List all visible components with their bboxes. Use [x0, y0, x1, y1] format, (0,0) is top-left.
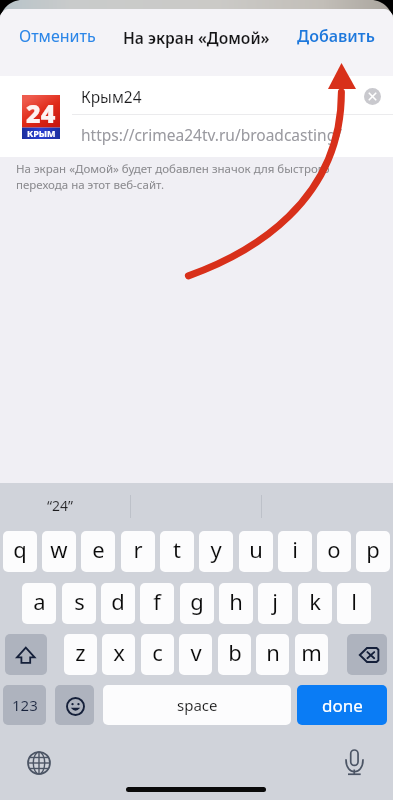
staticText: b — [228, 637, 242, 667]
staticText: u — [249, 534, 263, 564]
button[interactable]: space — [103, 685, 291, 725]
button[interactable]: q — [3, 531, 37, 572]
staticText: l — [351, 586, 357, 616]
button[interactable]: Крым24 — [81, 86, 142, 107]
staticText: p — [366, 534, 380, 564]
button[interactable]: t — [160, 531, 194, 572]
button[interactable]: z — [64, 634, 97, 675]
button[interactable]: v — [179, 634, 212, 675]
button[interactable]: Clear text — [364, 88, 381, 105]
staticText: На экран «Домой» — [123, 27, 270, 48]
staticText: n — [266, 637, 280, 667]
button[interactable]: x — [102, 634, 135, 675]
button[interactable]: 123 — [3, 685, 46, 725]
button[interactable]: h — [219, 583, 253, 624]
button[interactable]: s — [62, 583, 96, 624]
staticText: c — [152, 637, 163, 667]
staticText: k — [309, 586, 321, 616]
staticText: h — [229, 586, 243, 616]
button[interactable]: a — [22, 583, 56, 624]
button[interactable]: done — [297, 685, 387, 725]
button[interactable]: i — [278, 531, 312, 572]
staticText: i — [292, 534, 298, 564]
staticText: На экран «Домой» будет добавлен значок д… — [16, 161, 349, 192]
staticText: space — [177, 695, 218, 715]
button[interactable]: y — [199, 531, 233, 572]
staticText: w — [50, 534, 68, 564]
button[interactable]: Backspace — [347, 634, 387, 675]
staticText: e — [92, 534, 105, 564]
staticText: m — [301, 637, 322, 667]
button[interactable]: u — [239, 531, 273, 572]
staticText: a — [33, 586, 46, 616]
button[interactable]: g — [180, 583, 214, 624]
button[interactable]: Shift — [5, 634, 47, 675]
button[interactable]: m — [295, 634, 328, 675]
button[interactable]: k — [298, 583, 332, 624]
staticText: “24” — [47, 496, 74, 515]
staticText: 24 — [26, 96, 56, 130]
button[interactable]: o — [317, 531, 351, 572]
button[interactable]: e — [81, 531, 115, 572]
staticText: Добавить — [297, 25, 375, 47]
staticText: Крым24 — [81, 86, 142, 107]
button[interactable]: Отменить — [5, 19, 110, 53]
button[interactable]: Dictation — [346, 750, 363, 775]
button[interactable]: n — [256, 634, 289, 675]
staticText: f — [153, 586, 161, 616]
button[interactable]: f — [140, 583, 174, 624]
button[interactable]: Добавить — [283, 19, 389, 53]
staticText: y — [210, 534, 222, 564]
button[interactable]: j — [258, 583, 292, 624]
staticText: КРЫМ — [27, 127, 56, 139]
staticText: q — [13, 534, 27, 564]
button[interactable]: l — [337, 583, 371, 624]
staticText: v — [190, 637, 202, 667]
button[interactable]: c — [141, 634, 174, 675]
staticText: d — [111, 586, 125, 616]
staticText: done — [322, 694, 363, 717]
staticText: t — [173, 534, 181, 564]
button[interactable]: Emoji — [55, 685, 94, 725]
button[interactable]: d — [101, 583, 135, 624]
staticText: https://crimea24tv.ru/broadcasting/ — [81, 124, 342, 145]
staticText: s — [74, 586, 85, 616]
button[interactable]: b — [218, 634, 251, 675]
button[interactable]: https://crimea24tv.ru/broadcasting/ — [81, 124, 342, 145]
button[interactable]: w — [42, 531, 76, 572]
button[interactable]: p — [356, 531, 390, 572]
staticText: o — [327, 534, 341, 564]
staticText: z — [75, 637, 86, 667]
staticText: r — [133, 534, 143, 564]
staticText: j — [272, 586, 278, 616]
button[interactable]: Change keyboard — [27, 751, 51, 775]
staticText: g — [190, 586, 204, 616]
staticText: Отменить — [19, 25, 96, 47]
staticText: 123 — [12, 695, 38, 715]
staticText: x — [113, 637, 125, 667]
button[interactable]: r — [121, 531, 155, 572]
